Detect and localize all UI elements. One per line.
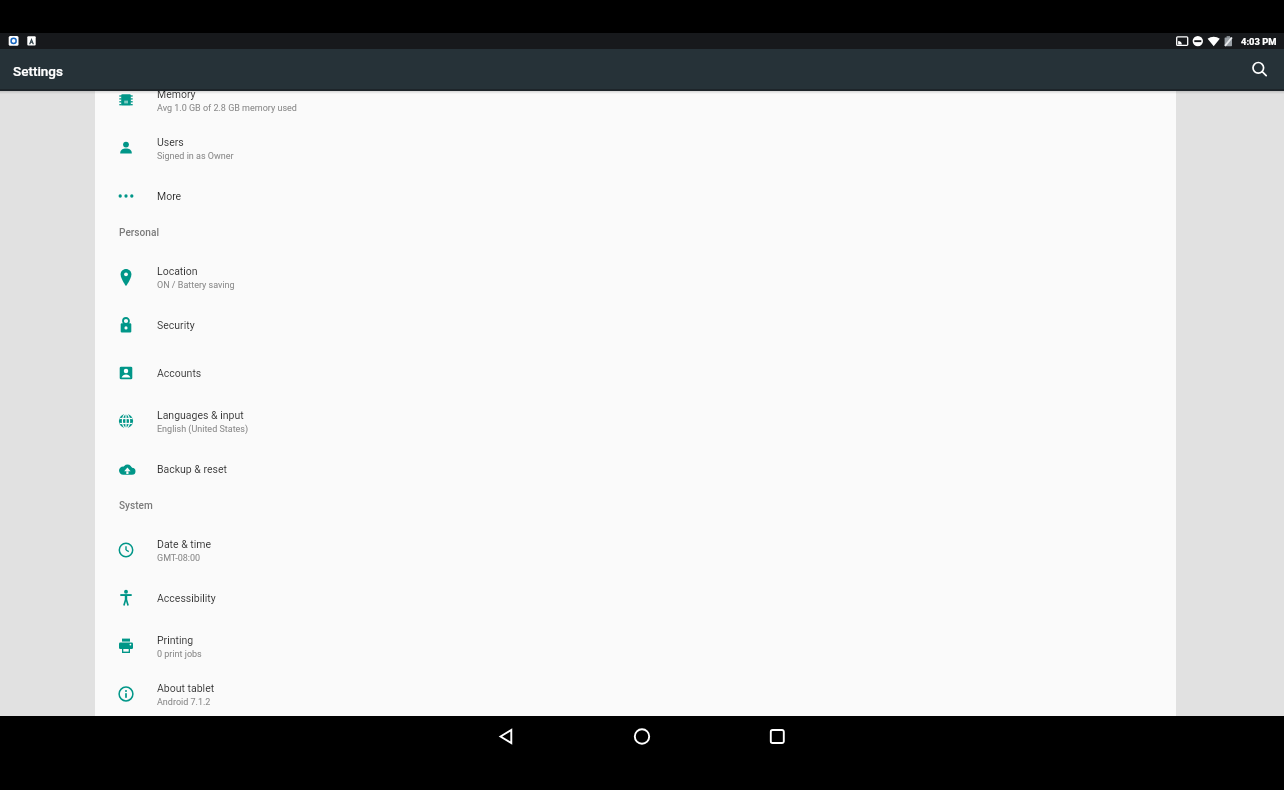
staticText: 0 print jobs	[157, 649, 202, 660]
button[interactable]: About tablet	[95, 670, 1176, 701]
button[interactable]	[1248, 58, 1272, 82]
staticText: Backup & reset	[157, 463, 227, 475]
staticText: GMT-08:00	[157, 553, 201, 564]
button[interactable]: Location	[95, 253, 1176, 301]
staticText: English (United States)	[157, 424, 249, 435]
staticText: Printing	[157, 634, 194, 646]
button[interactable]: Memory	[95, 91, 1176, 124]
staticText: Accessibility	[157, 592, 216, 604]
staticText: Security	[157, 319, 195, 331]
button[interactable]: Accounts	[95, 349, 1176, 397]
staticText: 4:03 PM	[1241, 36, 1277, 47]
button[interactable]: Backup & reset	[95, 445, 1176, 493]
staticText: System	[119, 500, 153, 512]
staticText: Languages & input	[157, 409, 244, 421]
staticText: Android 7.1.2	[157, 697, 211, 708]
staticText: Personal	[119, 227, 159, 239]
button[interactable]: Users	[95, 124, 1176, 172]
button[interactable]: Security	[95, 301, 1176, 349]
staticText: Memory	[157, 91, 196, 100]
staticText: Date & time	[157, 538, 212, 550]
staticText: Signed in as Owner	[157, 151, 234, 162]
staticText: Avg 1.0 GB of 2.8 GB memory used	[157, 103, 297, 114]
staticText: Accounts	[157, 367, 202, 379]
button[interactable]: Printing	[95, 622, 1176, 670]
staticText: ON / Battery saving	[157, 280, 235, 291]
staticText: About tablet	[157, 682, 215, 694]
staticText: More	[157, 190, 182, 202]
button[interactable]: Accessibility	[95, 574, 1176, 622]
button[interactable]: Date & time	[95, 526, 1176, 574]
staticText: Users	[157, 136, 184, 148]
button[interactable]: More	[95, 172, 1176, 220]
button[interactable]: Languages & input	[95, 397, 1176, 445]
staticText: Location	[157, 265, 198, 277]
staticText: Settings	[13, 63, 63, 79]
